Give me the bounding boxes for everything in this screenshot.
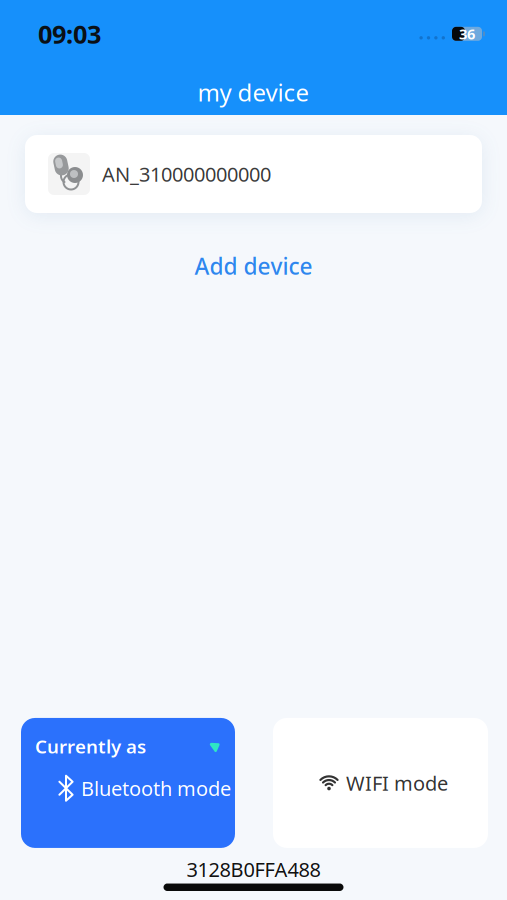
button[interactable]: Add device xyxy=(194,251,312,281)
staticText: WIFI mode xyxy=(346,770,448,796)
staticText: my device xyxy=(197,76,309,108)
button[interactable]: WIFI mode xyxy=(273,718,488,848)
button[interactable]: AN_310000000000 xyxy=(25,135,482,213)
staticText: Add device xyxy=(194,251,312,281)
staticText: Bluetooth mode xyxy=(81,775,231,802)
staticText: 36 xyxy=(459,24,475,44)
staticText: 09:03 xyxy=(38,17,101,51)
staticText: 3128B0FFA488 xyxy=(186,856,320,882)
staticText: AN_310000000000 xyxy=(102,161,271,187)
button[interactable]: Currently as xyxy=(21,718,235,848)
staticText: Currently as xyxy=(35,734,146,759)
